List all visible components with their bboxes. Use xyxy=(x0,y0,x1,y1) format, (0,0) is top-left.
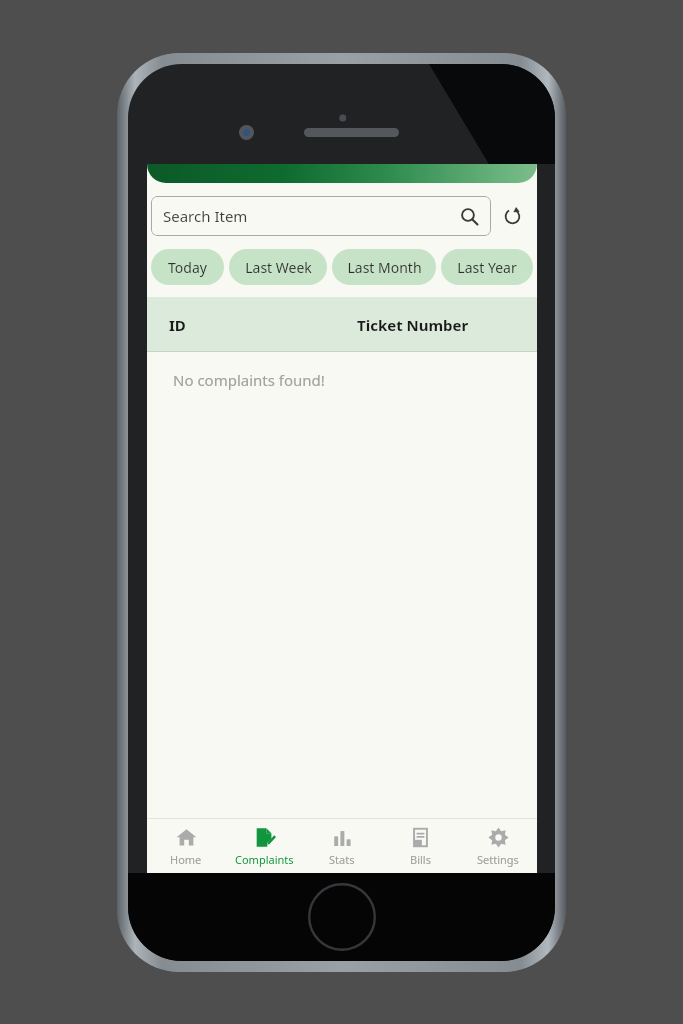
staticText: Search Item xyxy=(163,206,248,226)
staticText: Last Month xyxy=(347,258,422,277)
staticText: Home xyxy=(170,852,202,867)
staticText: Complaints xyxy=(235,852,294,867)
button[interactable]: Last Week xyxy=(229,249,327,285)
button[interactable]: Search Item xyxy=(151,196,491,236)
button[interactable]: Today xyxy=(151,249,224,285)
button[interactable]: Complaints xyxy=(225,819,303,873)
button[interactable]: Bills xyxy=(381,819,459,873)
staticText: Stats xyxy=(329,852,355,867)
staticText: Settings xyxy=(477,852,519,867)
staticText: Last Year xyxy=(457,258,517,277)
button[interactable]: Home xyxy=(147,819,225,873)
staticText: Today xyxy=(168,258,207,277)
button[interactable]: Last Year xyxy=(441,249,533,285)
button[interactable]: Stats xyxy=(303,819,381,873)
button[interactable]: Settings xyxy=(459,819,537,873)
staticText: No complaints found! xyxy=(173,370,325,390)
button[interactable]: Last Month xyxy=(332,249,436,285)
staticText: ID xyxy=(169,315,186,335)
staticText: Last Week xyxy=(245,258,312,277)
staticText: Bills xyxy=(410,852,431,867)
button[interactable]: Refresh xyxy=(491,195,533,237)
staticText: Ticket Number xyxy=(357,315,469,335)
